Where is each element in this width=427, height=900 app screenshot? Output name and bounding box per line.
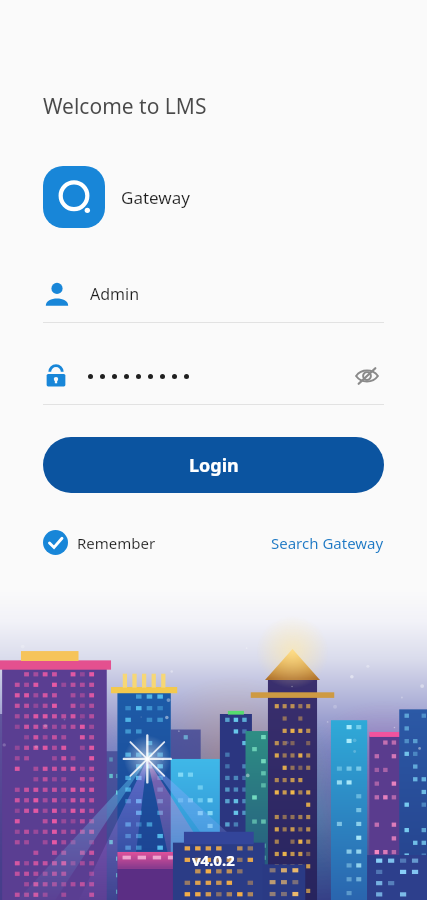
staticText: Gateway: [121, 186, 190, 209]
button[interactable]: Remember: [43, 530, 156, 555]
staticText: Admin: [90, 283, 140, 305]
staticText: Login: [189, 453, 239, 478]
button[interactable]: Show password: [43, 355, 384, 397]
staticText: Welcome to LMS: [43, 92, 207, 121]
button[interactable]: Admin: [43, 273, 384, 323]
button[interactable]: Gateway: [43, 166, 190, 228]
button[interactable]: Login: [43, 437, 384, 493]
staticText: Search Gateway: [271, 533, 384, 553]
staticText: Remember: [77, 533, 156, 553]
button[interactable]: Show password: [350, 359, 384, 393]
button[interactable]: Search Gateway: [271, 533, 384, 553]
staticText: v4.0.2: [192, 850, 235, 870]
